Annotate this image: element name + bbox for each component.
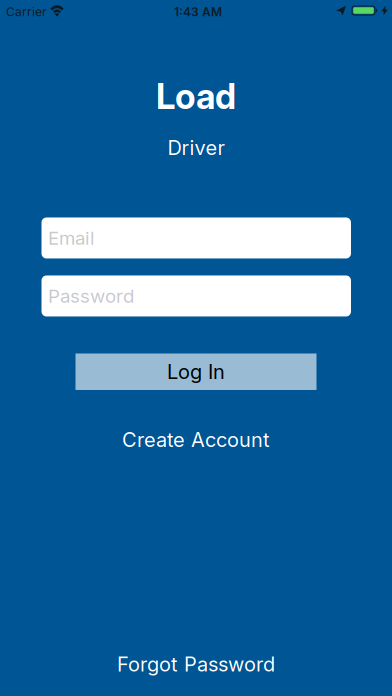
staticText: Password [48,285,134,307]
staticText: Email [48,227,95,249]
textField[interactable]: Email [49,229,351,247]
staticText: Carrier [6,5,47,19]
staticText: Create Account [122,428,270,452]
button[interactable]: Log In [75,353,316,390]
button[interactable]: Create Account [122,428,270,452]
staticText: Email [49,229,90,247]
staticText: Forgot Password [117,652,275,676]
secureTextField[interactable]: Password [49,287,351,305]
staticText: 1:43 AM [174,5,222,19]
button[interactable]: Forgot Password [117,652,275,676]
staticText: Driver [167,136,224,159]
staticText: Load [156,76,236,117]
staticText: Password [49,287,123,305]
staticText: Log In [167,360,225,383]
